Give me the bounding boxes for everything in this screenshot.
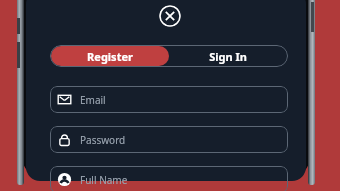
button[interactable]: Sign In <box>169 45 287 67</box>
button[interactable]: Full Name <box>50 166 288 191</box>
staticText: Register <box>87 49 133 64</box>
button[interactable]: Email <box>50 86 288 113</box>
button[interactable]: Close <box>159 5 181 27</box>
staticText: Full Name <box>80 173 128 187</box>
button[interactable]: Password <box>50 126 288 153</box>
button[interactable]: Register <box>51 46 169 66</box>
staticText: Password <box>80 133 126 147</box>
staticText: Email <box>80 93 106 107</box>
staticText: Sign In <box>209 49 247 64</box>
